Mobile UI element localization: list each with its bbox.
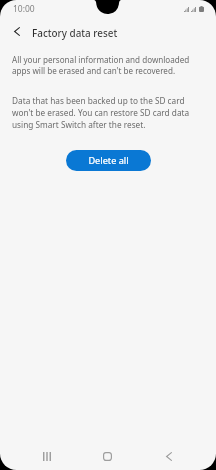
staticText: Delete all (88, 154, 129, 167)
button[interactable]: Delete all (66, 150, 151, 171)
button[interactable]: Back (138, 442, 199, 470)
button[interactable]: Home (77, 442, 138, 470)
button[interactable]: Recents (17, 442, 77, 470)
staticText: All your personal information and downlo… (12, 54, 190, 76)
staticText: Factory data reset (32, 26, 118, 39)
button[interactable]: Navigate up (3, 17, 31, 45)
staticText: 10:00 (13, 3, 35, 15)
staticText: Data that has been backed up to the SD c… (12, 95, 190, 130)
